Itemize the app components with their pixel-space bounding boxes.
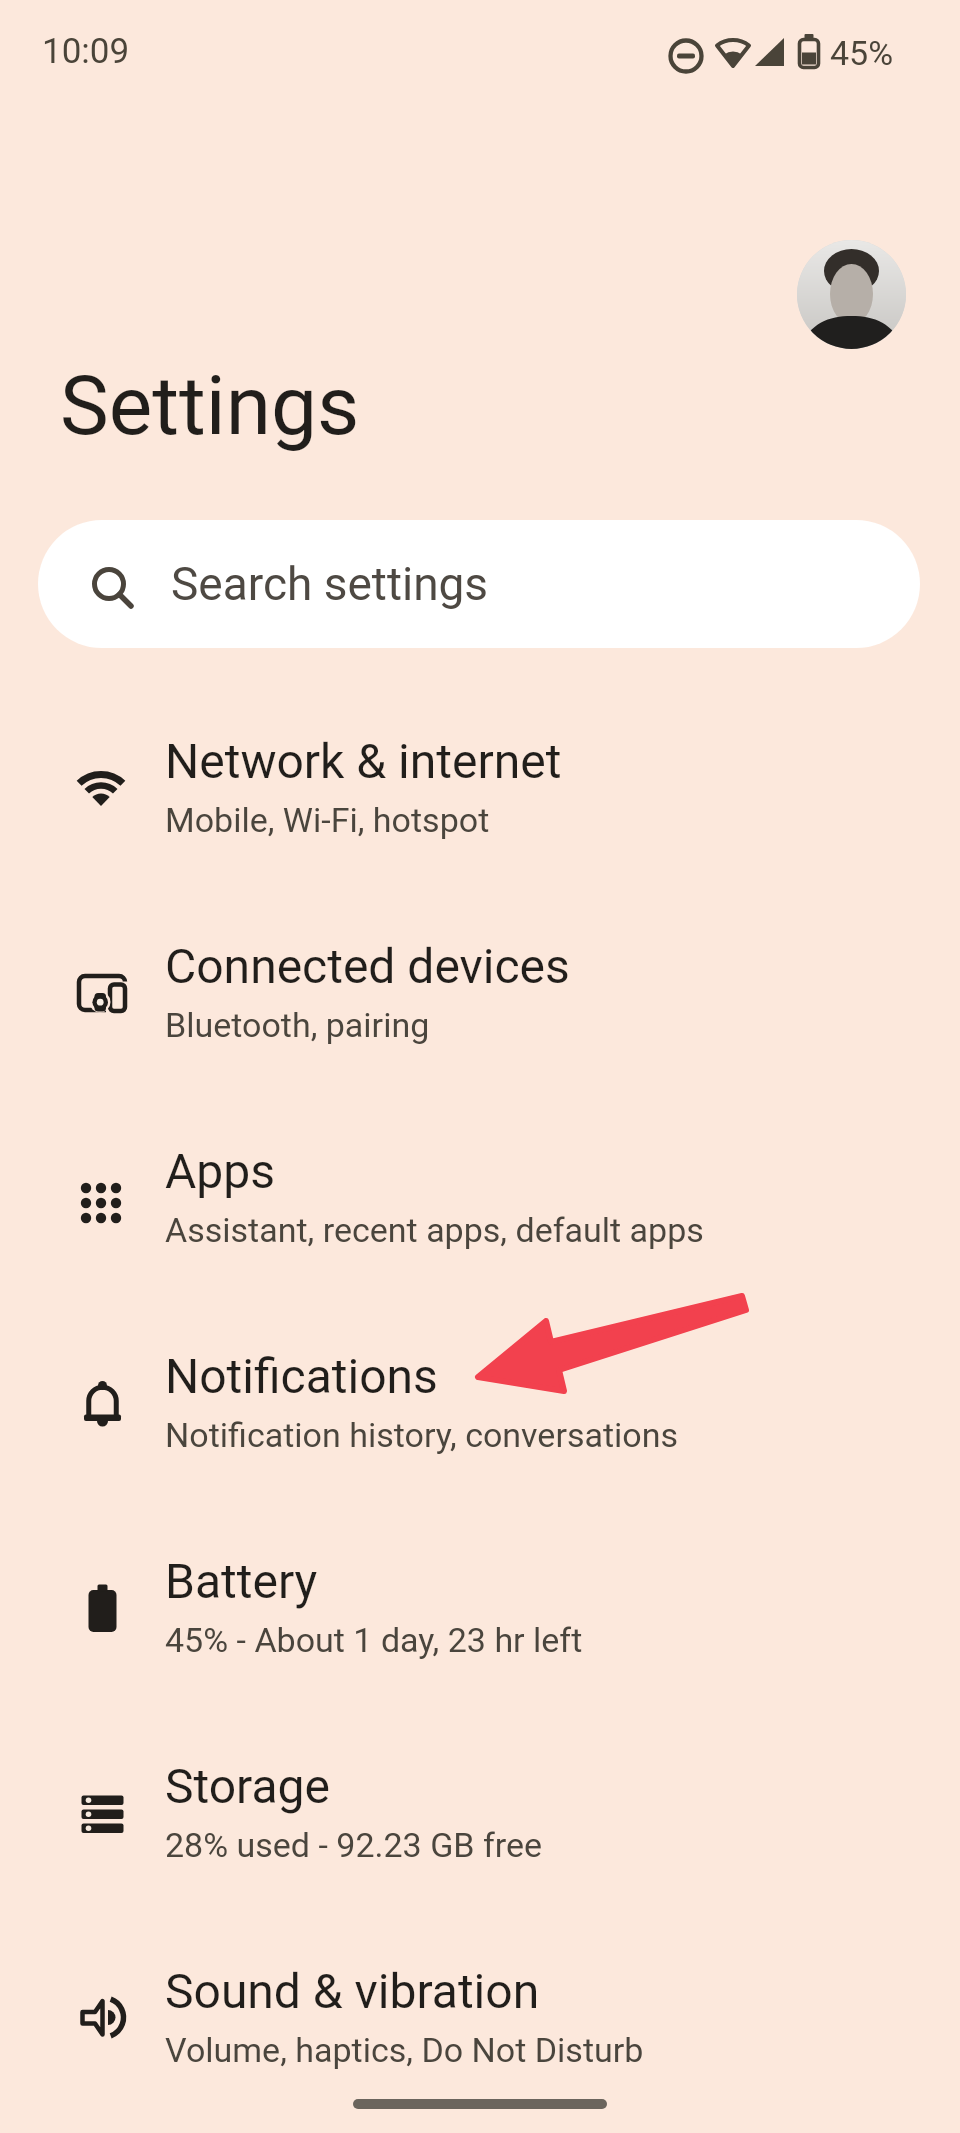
- staticText: Search settings: [171, 557, 489, 611]
- staticText: Mobile, Wi-Fi, hotspot: [165, 800, 490, 840]
- staticText: 10:09: [42, 31, 130, 72]
- staticText: Notifications: [165, 1348, 438, 1404]
- staticText: Network & internet: [165, 733, 562, 789]
- button[interactable]: Network & internet: [0, 690, 960, 895]
- staticText: Sound & vibration: [165, 1963, 540, 2019]
- staticText: Bluetooth, pairing: [165, 1005, 430, 1045]
- button[interactable]: Notifications: [0, 1305, 960, 1510]
- button[interactable]: Search settings: [38, 520, 920, 648]
- button[interactable]: [797, 240, 906, 349]
- button[interactable]: Storage: [0, 1715, 960, 1920]
- staticText: Apps: [165, 1143, 275, 1199]
- staticText: 45% - About 1 day, 23 hr left: [165, 1620, 583, 1660]
- button[interactable]: Battery: [0, 1510, 960, 1715]
- staticText: 45%: [830, 33, 894, 73]
- staticText: Settings: [60, 358, 360, 454]
- staticText: Connected devices: [165, 938, 570, 994]
- staticText: Storage: [165, 1758, 330, 1814]
- staticText: Assistant, recent apps, default apps: [165, 1210, 704, 1250]
- button[interactable]: Sound & vibration: [0, 1920, 960, 2125]
- staticText: Notification history, conversations: [165, 1415, 679, 1455]
- staticText: Battery: [165, 1553, 318, 1609]
- button[interactable]: Apps: [0, 1100, 960, 1305]
- staticText: 28% used - 92.23 GB free: [165, 1825, 543, 1865]
- staticText: Volume, haptics, Do Not Disturb: [165, 2030, 644, 2070]
- button[interactable]: Connected devices: [0, 895, 960, 1100]
